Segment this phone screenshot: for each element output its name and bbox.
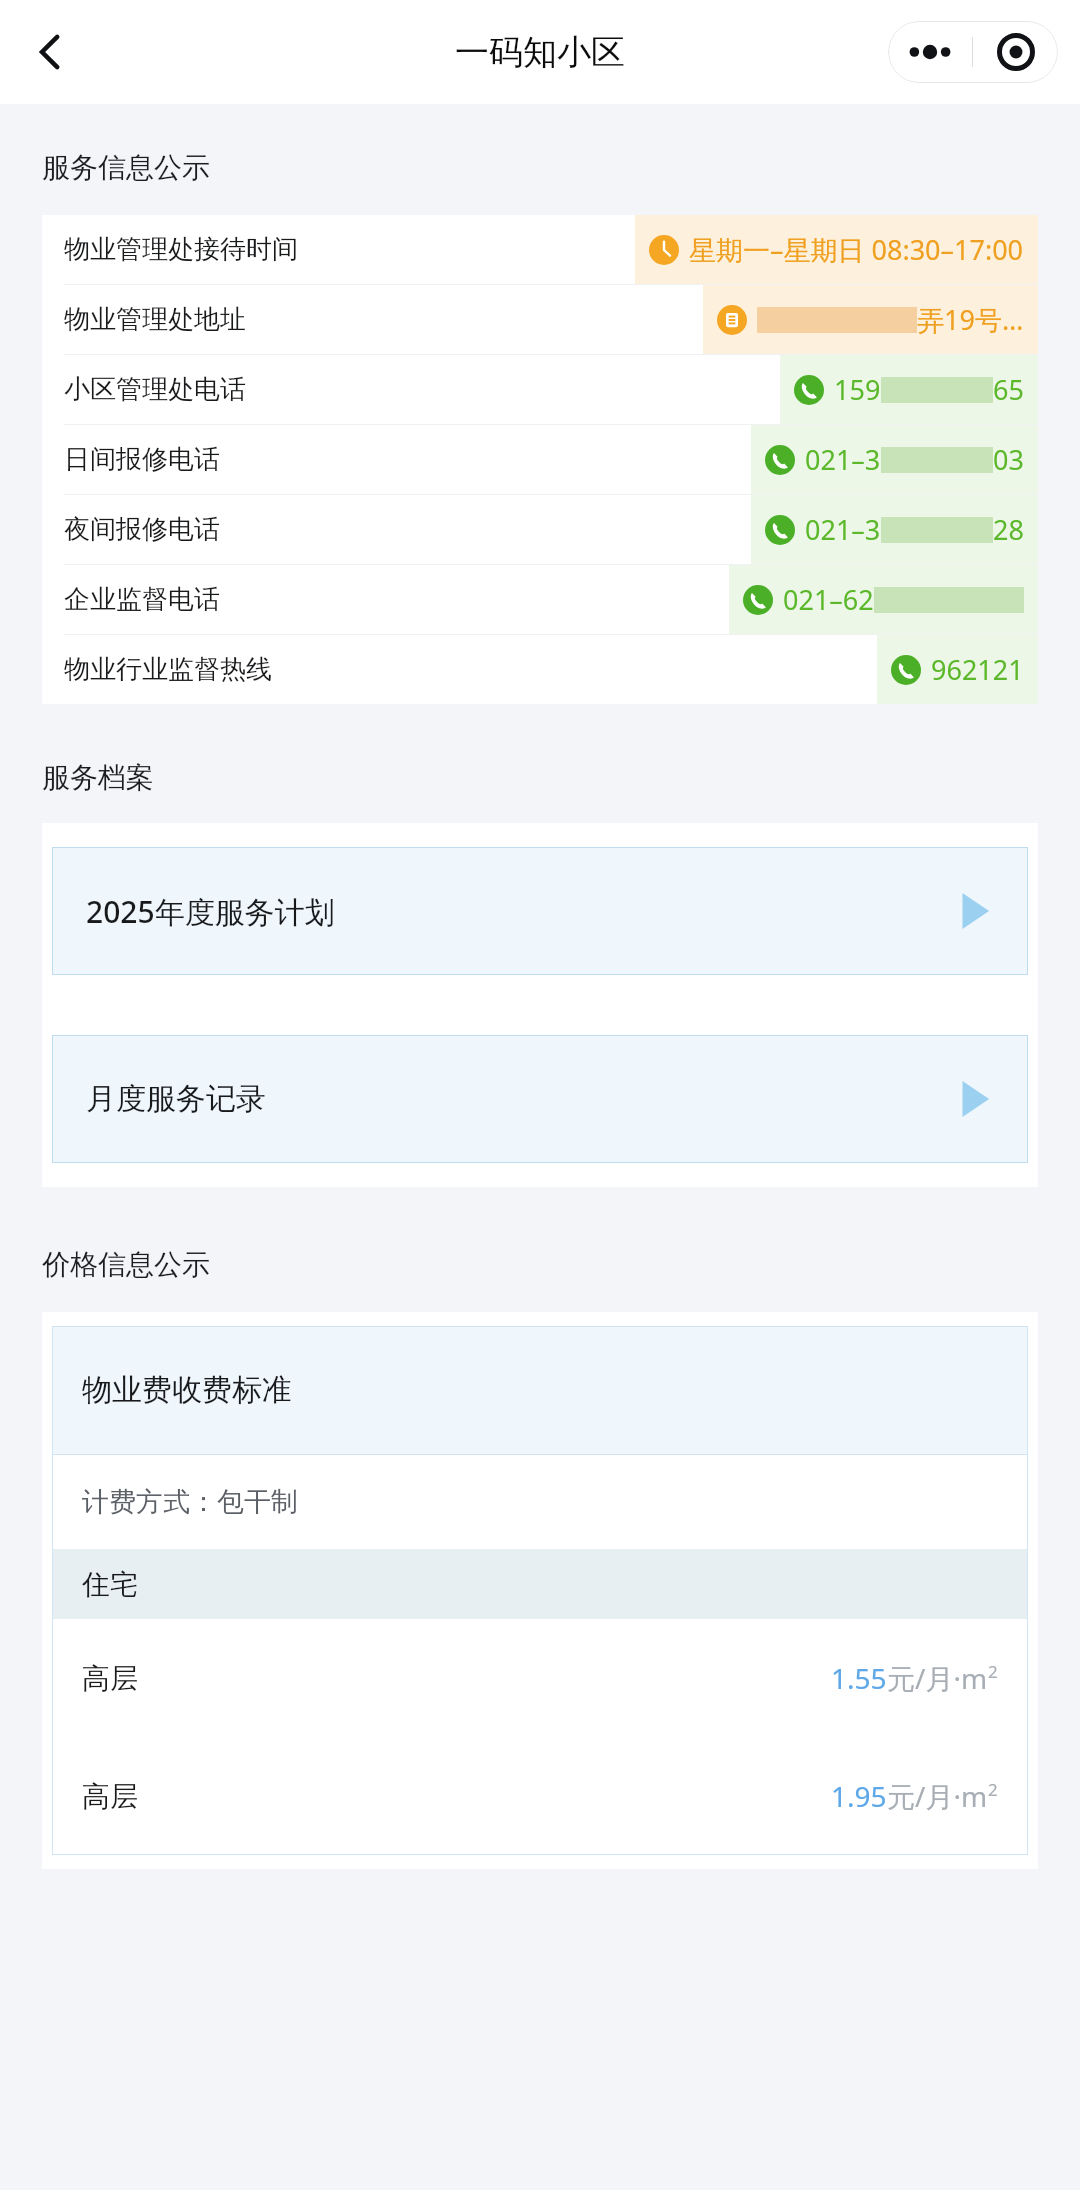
staticText: 2025年度服务计划	[86, 891, 335, 932]
staticText: 物业行业监督热线	[64, 653, 272, 686]
staticText: 元/月·m	[887, 1659, 988, 1697]
staticText: 服务档案	[42, 760, 154, 795]
staticText: 住宅	[82, 1567, 138, 1602]
button[interactable]: 小区管理处电话	[42, 355, 1038, 425]
button[interactable]: 夜间报修电话	[42, 495, 1038, 565]
staticText: 元/月·m	[887, 1777, 988, 1815]
button[interactable]: 高层	[52, 1737, 1028, 1855]
staticText: 28	[993, 511, 1024, 548]
staticText: 星期一–星期日 08:30–17:00	[689, 231, 1024, 268]
button[interactable]: 物业管理处地址	[42, 285, 1038, 355]
staticText: 物业费收费标准	[82, 1371, 292, 1409]
staticText: 962121	[931, 651, 1024, 688]
staticText: 服务信息公示	[42, 150, 210, 185]
staticText: 价格信息公示	[42, 1247, 210, 1282]
staticText: 弄19号…	[917, 301, 1024, 338]
staticText: 021–3	[805, 511, 881, 548]
staticText: 021–3	[805, 441, 881, 478]
staticText: 高层	[82, 1661, 138, 1696]
staticText: 夜间报修电话	[64, 513, 220, 546]
staticText: 物业管理处接待时间	[64, 233, 298, 266]
staticText: 计费方式：包干制	[82, 1485, 298, 1519]
button[interactable]: 日间报修电话	[42, 425, 1038, 495]
staticText: 物业管理处地址	[64, 303, 246, 336]
button[interactable]: 物业管理处接待时间	[42, 215, 1038, 285]
staticText: 021–62	[783, 581, 874, 618]
staticText: 159	[834, 371, 881, 408]
staticText: 高层	[82, 1779, 138, 1814]
button[interactable]: 物业行业监督热线	[42, 635, 1038, 704]
staticText: 一码知小区	[455, 31, 625, 74]
staticText: 月度服务记录	[86, 1080, 266, 1118]
staticText: 日间报修电话	[64, 443, 220, 476]
button[interactable]: Close	[973, 21, 1058, 83]
button[interactable]: More	[888, 21, 972, 83]
button[interactable]: 2025年度服务计划	[52, 847, 1028, 975]
button[interactable]: 高层	[52, 1619, 1028, 1737]
staticText: 2	[988, 1778, 998, 1801]
staticText: 企业监督电话	[64, 583, 220, 616]
staticText: 03	[993, 441, 1024, 478]
staticText: 1.95	[831, 1777, 887, 1815]
staticText: 2	[988, 1660, 998, 1683]
button[interactable]: 月度服务记录	[52, 1035, 1028, 1163]
button[interactable]: Back	[18, 20, 82, 84]
staticText: 1.55	[831, 1659, 887, 1697]
staticText: 65	[993, 371, 1024, 408]
button[interactable]: 企业监督电话	[42, 565, 1038, 635]
staticText: 小区管理处电话	[64, 373, 246, 406]
